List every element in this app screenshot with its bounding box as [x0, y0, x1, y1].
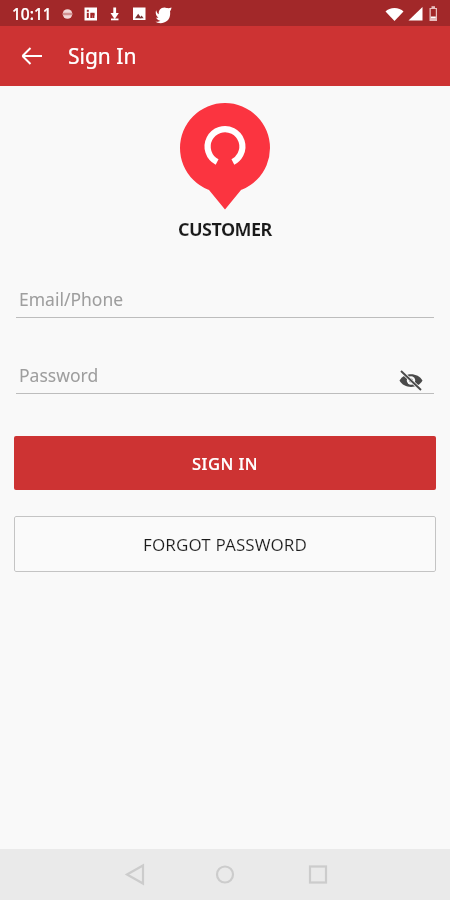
staticText: CUSTOMER [178, 217, 272, 242]
button[interactable]: FORGOT PASSWORD [14, 516, 436, 572]
button[interactable]: Back [14, 38, 50, 74]
staticText: 10:11 [12, 3, 52, 24]
staticText: SIGN IN [192, 452, 259, 474]
button[interactable]: SIGN IN [14, 436, 436, 490]
button[interactable]: Toggle password visibility [397, 367, 425, 394]
staticText: Password [19, 363, 99, 387]
staticText: Sign In [68, 42, 137, 71]
staticText: Email/Phone [19, 287, 124, 311]
staticText: FORGOT PASSWORD [143, 533, 308, 556]
